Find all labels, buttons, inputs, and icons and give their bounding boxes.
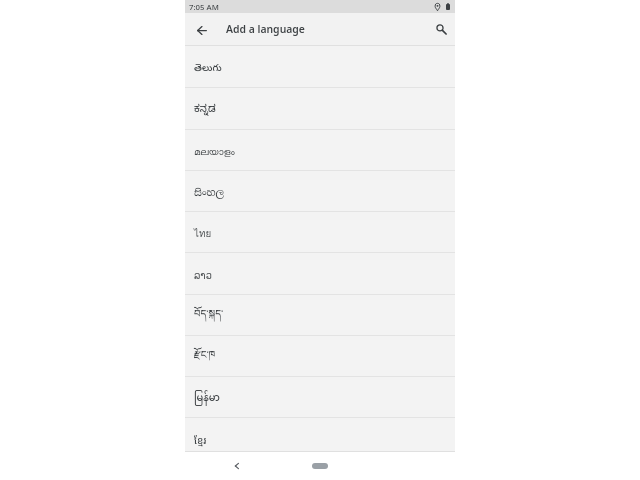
staticText: മലയാളം <box>194 147 235 157</box>
button[interactable]: Home <box>309 461 331 471</box>
staticText: ไทย <box>194 226 212 242</box>
staticText: བོད་སྐད་ <box>194 303 224 331</box>
staticText: ລາວ <box>194 270 212 281</box>
button[interactable]: བོད་སྐད་ <box>185 295 455 336</box>
staticText: 7:05 AM <box>189 2 219 13</box>
button[interactable]: සිංහල <box>185 171 455 212</box>
staticText: རྫོང་ཁ <box>194 344 216 372</box>
button[interactable]: ខ្មែរ <box>185 419 455 452</box>
button[interactable]: ລາວ <box>185 254 455 295</box>
staticText: ಕನ್ನಡ <box>194 104 216 117</box>
staticText: မြန်မာ <box>194 388 220 409</box>
staticText: తెలుగు <box>194 62 222 75</box>
button[interactable]: മലയാളം <box>185 130 455 171</box>
staticText: සිංහල <box>194 186 224 199</box>
button[interactable]: Back <box>229 458 245 474</box>
button[interactable]: తెలుగు <box>185 47 455 88</box>
button[interactable]: မြန်မာ <box>185 377 455 418</box>
button[interactable]: རྫོང་ཁ <box>185 336 455 377</box>
staticText: ខ្មែរ <box>194 434 207 447</box>
button[interactable]: ಕನ್ನಡ <box>185 89 455 130</box>
button[interactable]: ไทย <box>185 212 455 253</box>
staticText: Add a language <box>226 22 305 36</box>
button[interactable]: Search <box>429 16 451 38</box>
button[interactable]: Back <box>191 19 213 41</box>
